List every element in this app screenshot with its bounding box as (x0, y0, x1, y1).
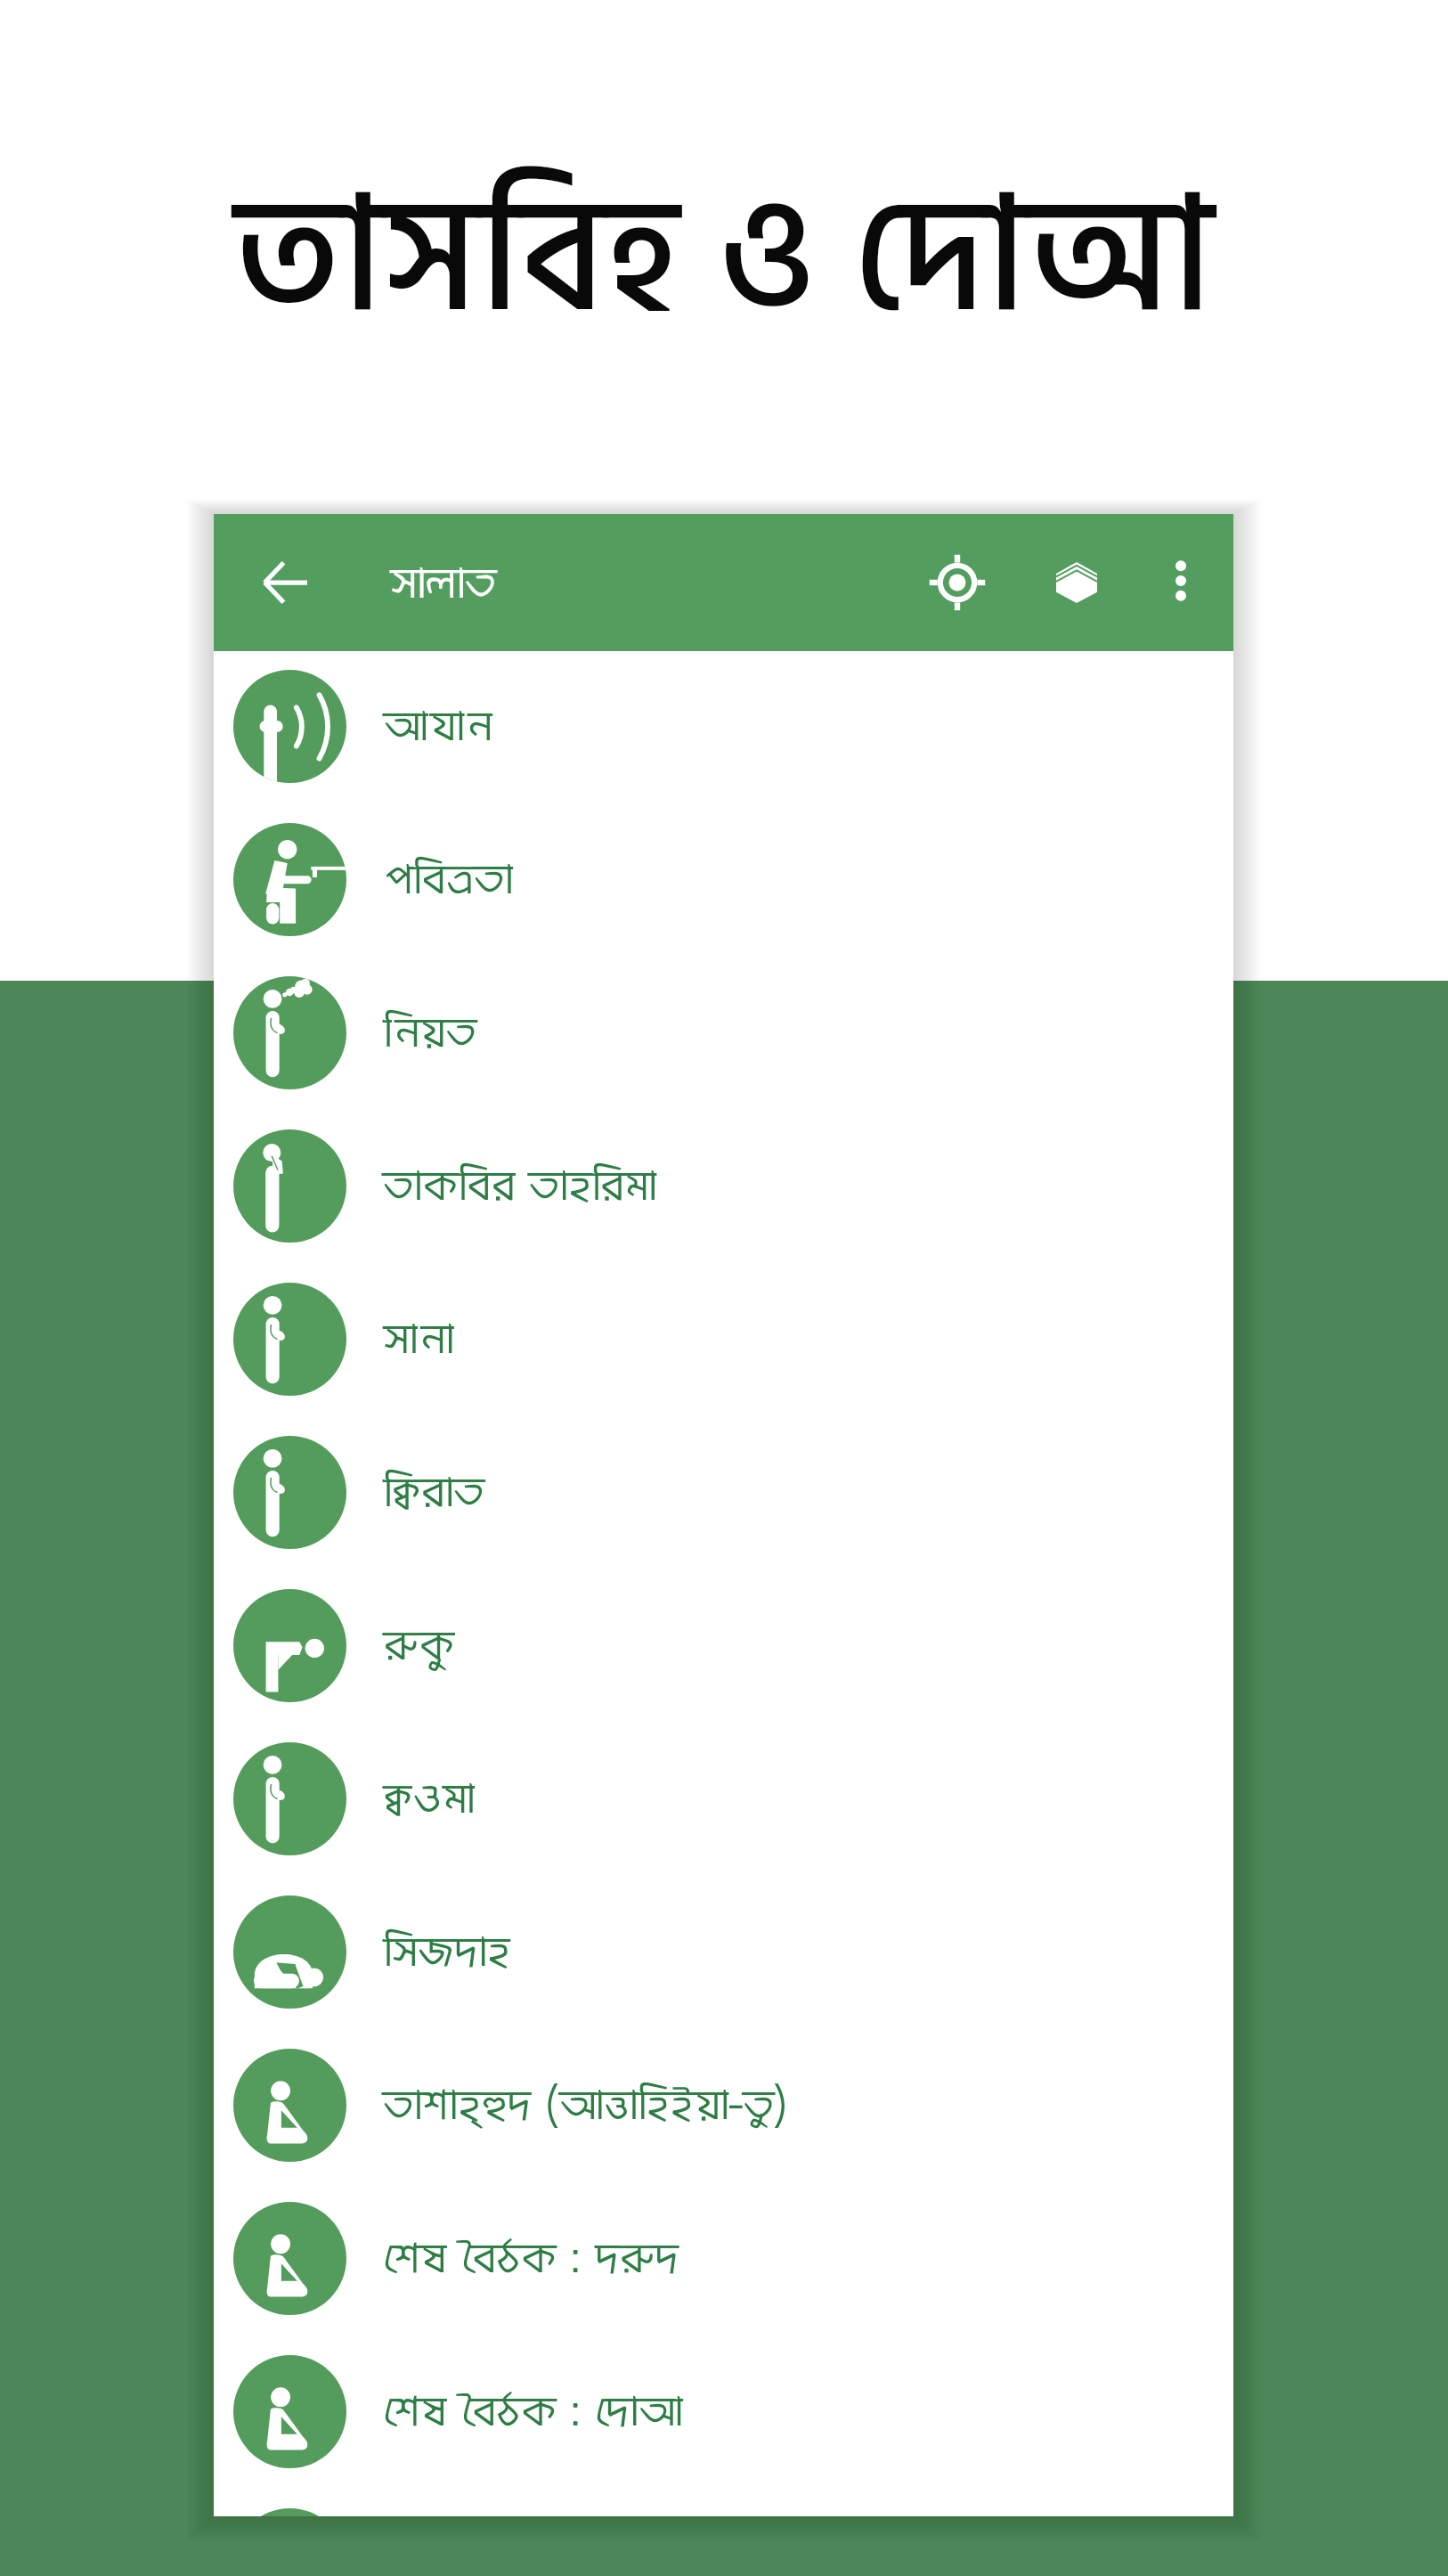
button[interactable]: রুকু (214, 1569, 1233, 1722)
button[interactable]: ক্বিরাত (214, 1415, 1233, 1569)
staticText: শেষ বৈঠক : দোআ (383, 2380, 683, 2447)
button[interactable]: শেষ বৈঠক : দরুদ (214, 2181, 1233, 2335)
button[interactable]: পবিত্রতা (214, 803, 1233, 956)
button[interactable]: Back (237, 534, 333, 631)
button[interactable]: তাকবির তাহরিমা (214, 1109, 1233, 1262)
staticText: শেষ বৈঠক : দরুদ (383, 2227, 679, 2294)
button[interactable]: শেষ বৈঠক : দোআ (214, 2335, 1233, 2488)
staticText: ক্বিরাত (383, 1461, 484, 1528)
staticText: তাশাহ্হুদ (আত্তাহিইয়া-তু) (383, 2074, 788, 2140)
button[interactable]: Kaaba direction (1029, 534, 1125, 631)
staticText: রুকু (383, 1614, 455, 1681)
staticText: আযান (383, 695, 492, 762)
button[interactable]: সিজদাহ (214, 1875, 1233, 2028)
staticText: ক্বওমা (383, 1767, 475, 1834)
button[interactable]: More options (1135, 534, 1227, 627)
staticText: পবিত্রতা (383, 848, 513, 915)
staticText: তাকবির তাহরিমা (383, 1154, 656, 1221)
button[interactable]: মোনাজাত (214, 2488, 1233, 2516)
staticText: সালাত (390, 551, 496, 619)
button[interactable]: Locate qibla (909, 534, 1005, 631)
staticText: সানা (383, 1308, 454, 1374)
button[interactable]: আযান (214, 649, 1233, 803)
staticText: তাসবিহ ও দোআ (234, 130, 1214, 389)
button[interactable]: নিয়ত (214, 956, 1233, 1109)
button[interactable]: তাশাহ্হুদ (আত্তাহিইয়া-তু) (214, 2028, 1233, 2181)
button[interactable]: ক্বওমা (214, 1722, 1233, 1875)
button[interactable]: সানা (214, 1262, 1233, 1415)
staticText: নিয়ত (383, 1001, 476, 1068)
staticText: সিজদাহ (383, 1920, 510, 1987)
